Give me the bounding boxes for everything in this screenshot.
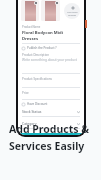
staticText: Category [22,121,37,126]
button[interactable]: Category [22,121,80,129]
button[interactable]: Remove image [55,1,59,5]
button[interactable]: Have Discount [22,102,80,106]
staticText: Product Specifications [22,77,52,81]
staticText: Floral Bodycon Midi Dresses [22,30,80,42]
button[interactable]: Product Name [22,25,80,44]
staticText: Publish the Product ? [27,46,57,50]
staticText: Product Name [22,25,41,29]
button[interactable]: Product Description [22,53,80,74]
staticText: Write something about your product [22,58,77,62]
button[interactable]: Add more images [64,3,80,19]
button[interactable]: Stock Status [22,109,80,117]
staticText: Add More [67,11,78,14]
staticText: Add Products & [9,122,90,136]
staticText: Have Discount [27,102,48,106]
button[interactable]: Publish the Product ? [22,46,80,50]
staticText: Images [68,14,77,17]
staticText: Price [22,91,29,95]
staticText: Stock Status [22,109,42,114]
button[interactable]: Price [22,91,80,100]
button[interactable]: Product image [21,0,39,21]
staticText: Product Description [22,53,49,57]
button[interactable]: Remove image [34,1,38,5]
button[interactable]: Product image [41,0,60,21]
staticText: Services Easily [9,139,85,153]
button[interactable]: Product Specifications [22,77,80,88]
